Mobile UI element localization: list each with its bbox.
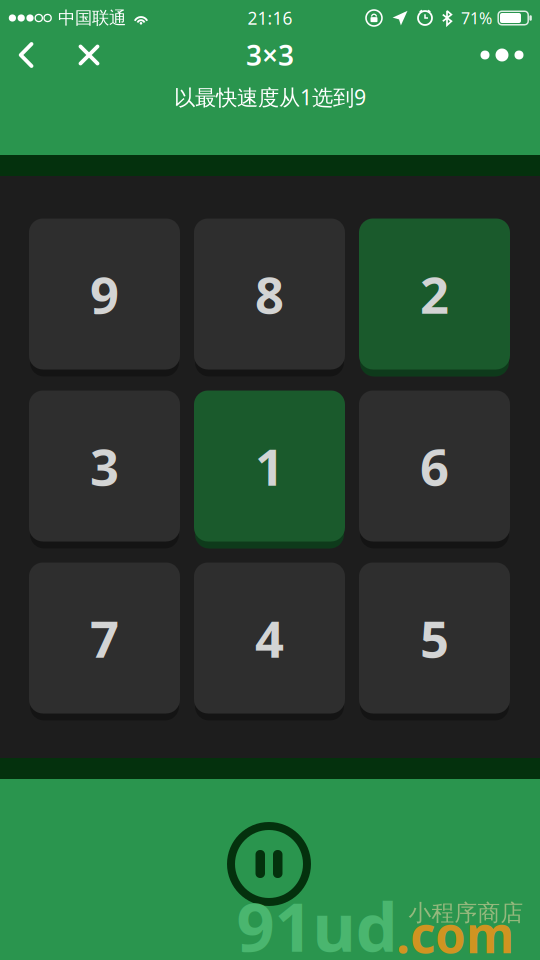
staticText: 9	[90, 260, 119, 328]
staticText: 小程序商店	[408, 899, 523, 927]
staticText: 2	[420, 260, 449, 328]
staticText: 71%	[461, 7, 492, 29]
button[interactable]: 9	[29, 218, 180, 369]
staticText: 7	[90, 604, 119, 672]
staticText: 3	[90, 432, 119, 500]
staticText: 5	[420, 604, 449, 672]
staticText: 21:16	[247, 6, 292, 29]
staticText: 8	[255, 260, 284, 328]
staticText: .com	[396, 901, 514, 960]
button[interactable]: 1	[194, 390, 345, 541]
staticText: 4	[255, 604, 284, 672]
staticText: 91ud	[236, 882, 397, 960]
button[interactable]: 6	[359, 390, 510, 541]
button[interactable]: 4	[194, 562, 345, 713]
button[interactable]: 7	[29, 562, 180, 713]
button[interactable]: 5	[359, 562, 510, 713]
button[interactable]: More options	[471, 30, 533, 80]
button[interactable]: 2	[359, 218, 510, 369]
staticText: 1	[255, 432, 284, 500]
button[interactable]: Back	[0, 27, 54, 83]
staticText: 中国联通	[58, 7, 126, 29]
button[interactable]: Close	[61, 27, 117, 83]
button[interactable]: Pause	[221, 816, 317, 912]
staticText: 6	[420, 432, 449, 500]
button[interactable]: 3	[29, 390, 180, 541]
staticText: 3×3	[246, 36, 294, 74]
button[interactable]: 8	[194, 218, 345, 369]
staticText: 以最快速度从1选到9	[174, 83, 366, 111]
